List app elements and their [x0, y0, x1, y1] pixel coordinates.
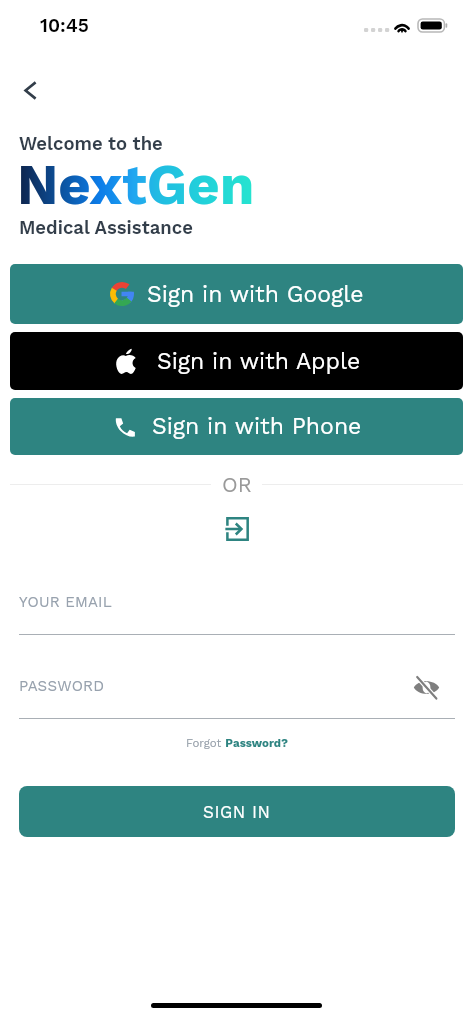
- staticText: SIGN IN: [203, 802, 271, 822]
- staticText: NextGen: [17, 152, 255, 218]
- button[interactable]: Sign in with Phone: [10, 398, 463, 455]
- staticText: YOUR EMAIL: [19, 593, 112, 611]
- staticText: Welcome to the: [19, 133, 163, 155]
- staticText: Sign in with Google: [147, 281, 364, 308]
- staticText: Medical Assistance: [19, 217, 193, 239]
- staticText: Sign in with Phone: [152, 413, 362, 440]
- staticText: Sign in with Apple: [157, 348, 361, 375]
- staticText: OR: [222, 472, 252, 497]
- staticText: PASSWORD: [19, 677, 105, 695]
- button[interactable]: Forgot Password?: [182, 733, 292, 752]
- button[interactable]: Log in: [218, 510, 256, 548]
- button[interactable]: Back: [12, 72, 48, 108]
- button[interactable]: Sign in with Google: [10, 264, 463, 324]
- button[interactable]: Show password: [409, 670, 443, 704]
- staticText: 10:45: [40, 14, 89, 36]
- button[interactable]: SIGN IN: [19, 786, 455, 837]
- button[interactable]: Sign in with Apple: [10, 332, 463, 390]
